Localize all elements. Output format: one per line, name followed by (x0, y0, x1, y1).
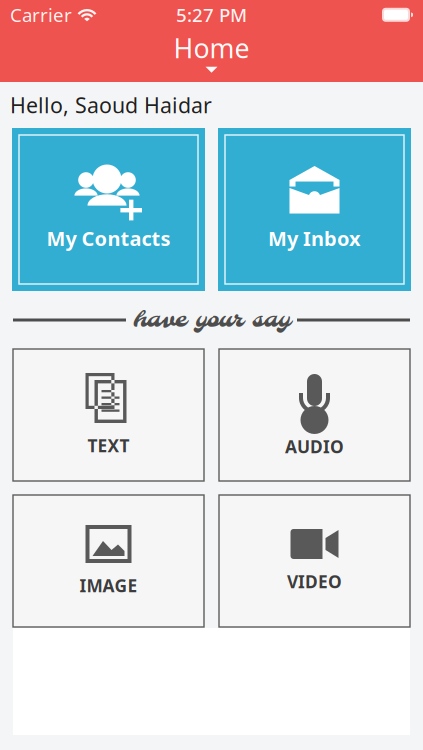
staticText: VIDEO (287, 570, 342, 593)
button[interactable]: My Contacts (12, 128, 205, 291)
staticText: Hello, Saoud Haidar (10, 91, 212, 119)
button[interactable]: TEXT (13, 349, 204, 481)
staticText: Carrier (10, 2, 72, 27)
staticText: My Inbox (268, 225, 361, 252)
button[interactable]: AUDIO (219, 349, 410, 481)
button[interactable]: My Inbox (218, 128, 411, 291)
button[interactable]: IMAGE (13, 495, 204, 627)
staticText: have your say (133, 305, 290, 335)
button[interactable]: VIDEO (219, 495, 410, 627)
staticText: TEXT (87, 434, 129, 457)
staticText: AUDIO (285, 435, 344, 458)
staticText: 5:27 PM (176, 2, 247, 27)
staticText: My Contacts (46, 225, 170, 252)
staticText: Home (173, 30, 249, 66)
button[interactable]: Home (0, 28, 423, 81)
staticText: IMAGE (79, 574, 137, 597)
